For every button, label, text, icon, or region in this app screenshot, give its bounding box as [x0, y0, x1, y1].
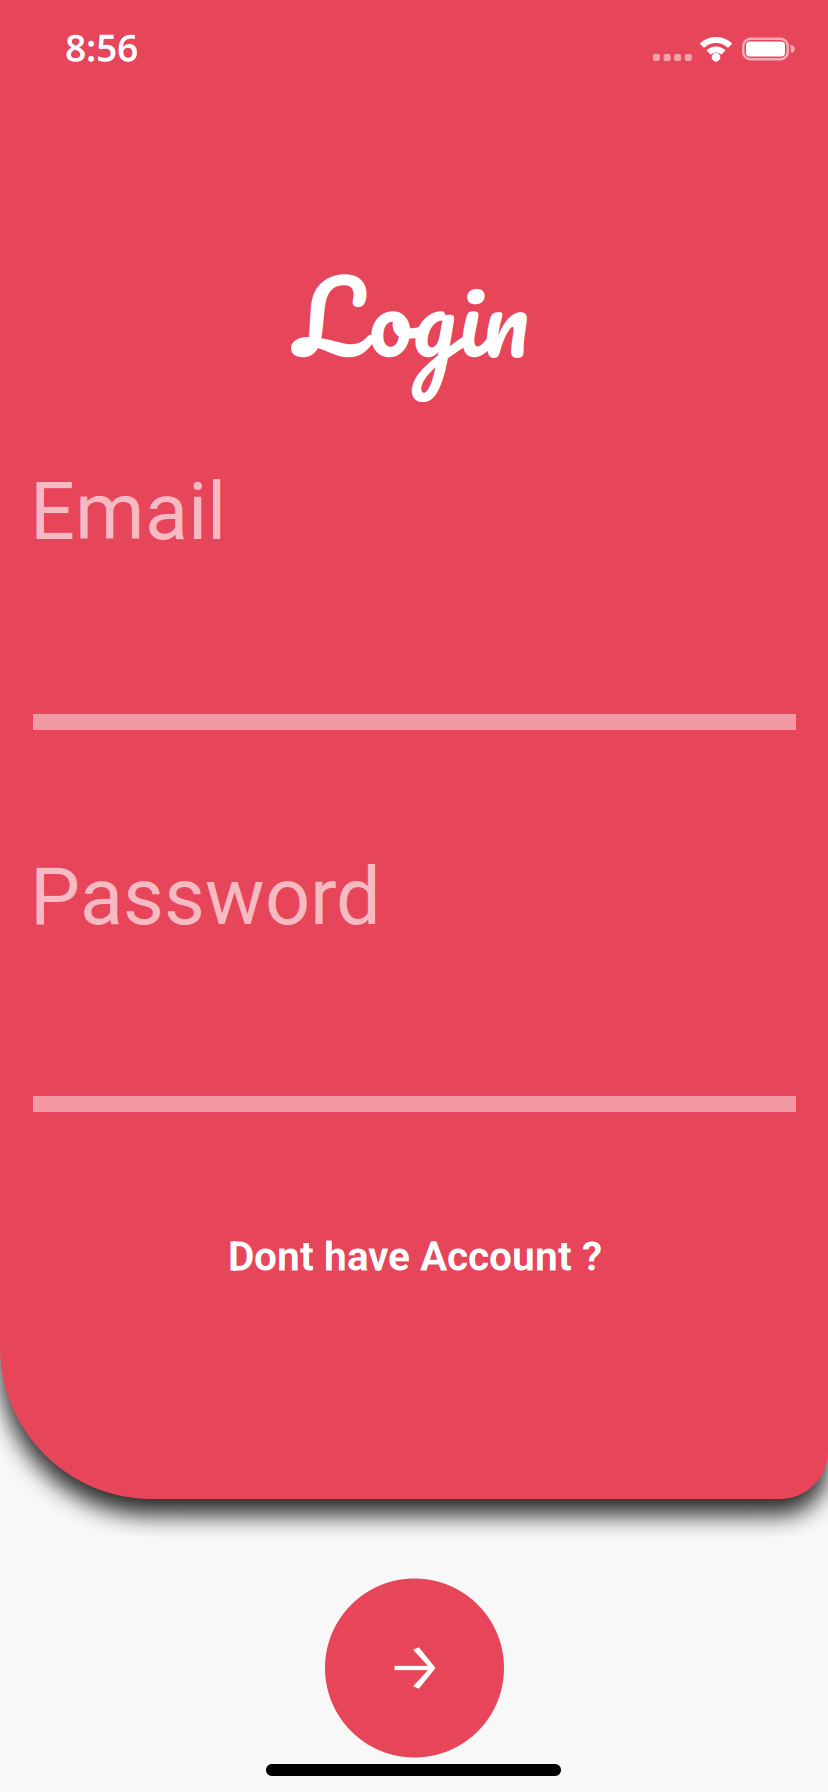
button[interactable]: Password	[33, 850, 796, 1112]
staticText: Password	[30, 850, 381, 943]
button[interactable]: Dont have Account ?	[1, 1233, 828, 1280]
staticText: Dont have Account ?	[228, 1233, 602, 1280]
staticText: 8:56	[65, 22, 138, 72]
button[interactable]: Log in	[325, 1578, 504, 1757]
staticText: Email	[30, 465, 226, 558]
staticText: Login	[295, 230, 529, 401]
button[interactable]: Email	[33, 465, 796, 730]
